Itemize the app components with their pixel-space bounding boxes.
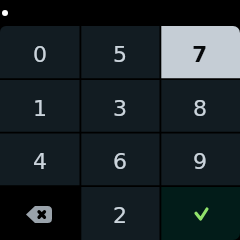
staticText: 9: [193, 149, 207, 175]
button[interactable]: 9: [160, 133, 240, 187]
button[interactable]: 1: [0, 80, 80, 134]
button[interactable]: 6: [80, 133, 160, 187]
button[interactable]: 8: [160, 80, 240, 134]
button[interactable]: 0: [0, 26, 80, 80]
staticText: 8: [193, 96, 207, 122]
button[interactable]: 3: [80, 80, 160, 134]
button[interactable]: 5: [80, 26, 160, 80]
button[interactable]: 4: [0, 133, 80, 187]
button[interactable]: 7: [160, 26, 240, 80]
staticText: 2: [113, 203, 127, 229]
staticText: 1: [33, 96, 47, 122]
staticText: 7: [192, 42, 208, 68]
button[interactable]: Backspace: [0, 187, 80, 240]
staticText: 4: [33, 149, 47, 175]
button[interactable]: Confirm: [160, 187, 240, 240]
staticText: 3: [113, 96, 127, 122]
staticText: 0: [33, 42, 47, 68]
staticText: 6: [113, 149, 127, 175]
button[interactable]: 2: [80, 187, 160, 240]
staticText: 5: [113, 42, 127, 68]
